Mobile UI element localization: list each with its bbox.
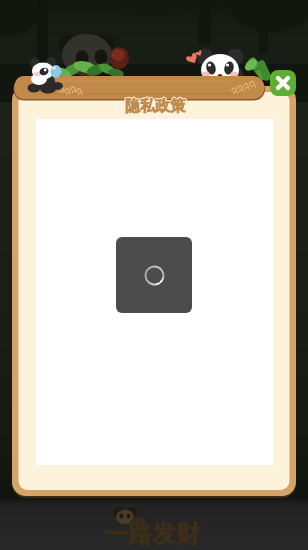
staticText: 隐私政策 xyxy=(126,97,186,116)
staticText: 隐私政策 xyxy=(124,97,184,116)
staticText: 隐私政策 xyxy=(125,97,185,116)
staticText: 隐私政策 xyxy=(125,96,185,115)
staticText: 一路发财 xyxy=(104,519,200,549)
button[interactable]: Close xyxy=(270,70,296,96)
staticText: 隐私政策 xyxy=(125,98,185,117)
